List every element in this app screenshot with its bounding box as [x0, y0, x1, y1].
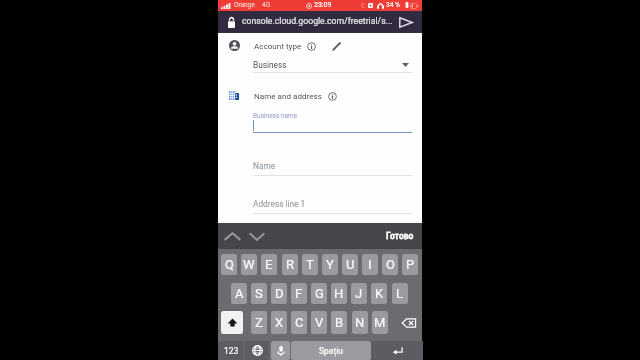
staticText: 23:09 [314, 1, 332, 9]
staticText: W [243, 257, 255, 272]
button[interactable]: Y [322, 254, 338, 275]
button[interactable]: Account type [254, 41, 302, 50]
button[interactable]: U [342, 254, 358, 275]
button[interactable]: G [311, 283, 327, 304]
button[interactable]: More information [307, 42, 316, 51]
button[interactable]: O [382, 254, 398, 275]
button[interactable]: E [261, 254, 277, 275]
button[interactable]: Previous field [222, 228, 243, 245]
staticText: console.cloud.google.com/freetrial/s... [242, 16, 393, 26]
button[interactable]: L [392, 283, 408, 304]
button[interactable]: M [372, 311, 388, 334]
button[interactable]: Voice input [271, 341, 290, 360]
staticText: K [375, 286, 384, 301]
staticText: 123 [224, 346, 239, 356]
staticText: G [315, 286, 324, 301]
button[interactable]: Q [221, 254, 237, 275]
button[interactable]: S [251, 283, 267, 304]
button[interactable]: More information [328, 92, 337, 101]
button[interactable]: Shift [221, 311, 243, 334]
button[interactable]: Готово [379, 226, 420, 246]
staticText: L [396, 286, 404, 301]
button[interactable]: N [352, 311, 368, 334]
staticText: Y [326, 257, 334, 272]
button[interactable]: Enter [371, 341, 423, 360]
button[interactable]: F [291, 283, 307, 304]
button[interactable]: P [402, 254, 418, 275]
staticText: 4G [262, 1, 271, 9]
button[interactable]: Spațiu [291, 341, 371, 360]
staticText: X [275, 315, 284, 330]
staticText: Name [253, 161, 276, 171]
staticText: Address line 1 [253, 199, 306, 209]
staticText: M [374, 315, 386, 330]
staticText: Business [253, 60, 287, 70]
button[interactable]: Site information [223, 14, 240, 30]
staticText: Готово [386, 231, 414, 241]
button[interactable]: K [371, 283, 387, 304]
button[interactable]: T [302, 254, 318, 275]
button[interactable]: Go [397, 14, 415, 30]
staticText: Business name [253, 112, 298, 120]
button[interactable]: Backspace [398, 311, 420, 334]
staticText: F [295, 286, 303, 301]
button[interactable]: Name and address [229, 91, 239, 100]
staticText: Z [255, 315, 263, 330]
button[interactable]: Edit [330, 40, 343, 53]
staticText: E [265, 257, 273, 272]
button[interactable]: V [311, 311, 327, 334]
button[interactable]: C [291, 311, 307, 334]
button[interactable]: 123 [218, 341, 244, 360]
button[interactable]: I [362, 254, 378, 275]
button[interactable]: Change keyboard language [245, 341, 269, 360]
staticText: O [386, 257, 395, 272]
staticText: I [368, 257, 372, 272]
button[interactable]: W [241, 254, 257, 275]
button[interactable]: Next field [245, 228, 269, 245]
button[interactable]: X [271, 311, 287, 334]
button[interactable]: J [351, 283, 367, 304]
staticText: J [355, 286, 363, 301]
staticText: 34 % [386, 1, 400, 9]
staticText: B [335, 315, 344, 330]
staticText: S [255, 286, 263, 301]
button[interactable]: H [331, 283, 347, 304]
button[interactable]: D [271, 283, 287, 304]
staticText: P [406, 257, 415, 272]
staticText: C [295, 315, 304, 330]
staticText: Orange [234, 1, 255, 9]
staticText: T [306, 257, 314, 272]
button[interactable]: A [231, 283, 247, 304]
staticText: H [334, 286, 344, 301]
staticText: D [275, 286, 284, 301]
staticText: A [235, 286, 244, 301]
button[interactable]: Account [229, 40, 240, 51]
button[interactable]: Name and address [254, 91, 322, 100]
staticText: V [315, 315, 324, 330]
staticText: N [355, 315, 365, 330]
button[interactable]: R [282, 254, 298, 275]
button[interactable]: B [331, 311, 347, 334]
button[interactable]: Z [251, 311, 267, 334]
staticText: Q [225, 257, 234, 272]
staticText: Spațiu [319, 346, 343, 356]
staticText: R [286, 257, 295, 272]
staticText: U [346, 257, 355, 272]
